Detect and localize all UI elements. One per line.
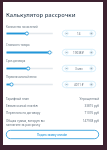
button[interactable]: 3 мес [62,65,96,72]
staticText: Срок договора [6,59,26,63]
staticText: Общая сумма, которую вы заплатите за рас… [6,119,80,127]
staticText: Первоначальный взнос [6,75,37,79]
staticText: 19038 ₽ [73,51,85,55]
staticText: Упрощенный [79,97,99,101]
staticText: 71076 руб [84,111,99,115]
staticText: Ежемесячный платёж [6,104,82,108]
staticText: Стоимость товара [6,43,30,47]
staticText: 147938 руб [82,119,99,123]
button[interactable]: Подать заявку онлайн [6,130,99,139]
staticText: Калькулятор рассрочки [6,11,76,19]
staticText: Переплата по договору [6,111,82,115]
button[interactable]: 14 [62,30,96,37]
staticText: Тарифный план [6,97,77,101]
staticText: 14 [77,32,81,36]
staticText: Количество начислений [6,25,38,29]
button[interactable]: Первоначальный взнос [6,81,53,88]
button[interactable]: 4011 ₽ [62,81,96,88]
staticText: 4011 ₽ [74,83,84,87]
button[interactable]: 19038 ₽ [62,49,96,56]
staticText: Подать заявку онлайн [37,133,68,137]
staticText: 3 мес [75,67,83,71]
button[interactable]: Стоимость товара [6,49,53,56]
button[interactable]: Срок договора [6,65,53,72]
button[interactable]: Количество начислений [6,30,53,37]
staticText: 33815 руб [84,104,99,108]
